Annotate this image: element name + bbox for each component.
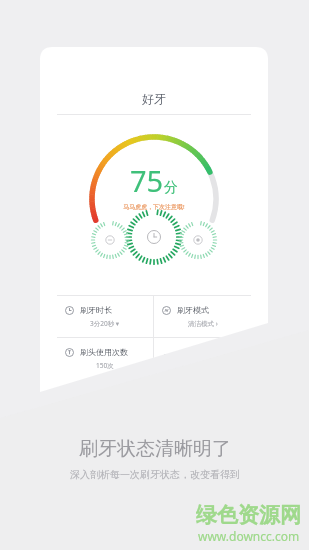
staticText: 刷牙时长 <box>80 305 112 315</box>
staticText: 刷牙状态清晰明了 <box>79 437 231 461</box>
staticText: 深入剖析每一次刷牙状态，改变看得到 <box>70 468 240 481</box>
staticText: 刷头使用次数 <box>80 347 128 357</box>
staticText: 好牙 <box>142 91 166 106</box>
staticText: 150次 <box>96 361 114 370</box>
button[interactable]: 刷牙时长 <box>57 296 153 337</box>
staticText: 绿色资源网 <box>196 502 301 528</box>
staticText: 3分20秒 ▾ <box>90 319 120 328</box>
staticText: 马马虎虎，下次注意哦! <box>123 203 185 211</box>
button[interactable] <box>154 338 251 379</box>
staticText: 75 <box>130 161 164 200</box>
staticText: 刷牙模式 <box>177 305 209 315</box>
button[interactable]: 刷牙模式 <box>154 296 251 337</box>
button[interactable]: 刷头使用次数 <box>57 338 153 379</box>
staticText: www.downcc.com <box>198 528 300 544</box>
staticText: 清洁模式 › <box>188 319 218 328</box>
staticText: 分 <box>164 179 178 197</box>
